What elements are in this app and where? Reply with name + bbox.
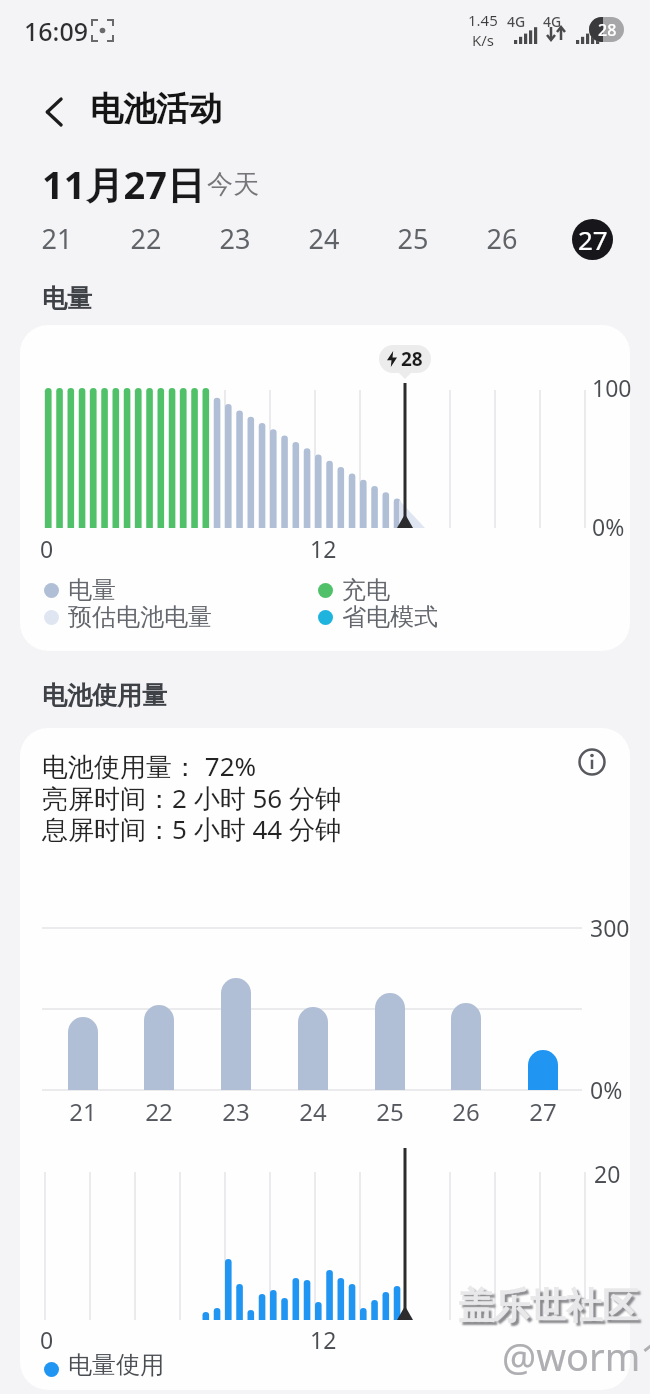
staticText: 20: [594, 1158, 621, 1189]
button[interactable]: [45, 98, 64, 126]
staticText: 16:09: [24, 14, 89, 48]
staticText: 省电模式: [342, 602, 438, 632]
button[interactable]: 23: [213, 220, 257, 257]
staticText: 22: [139, 1095, 179, 1128]
staticText: 盖乐世社区: [458, 1283, 638, 1328]
staticText: 4G: [507, 12, 526, 31]
staticText: 300: [590, 912, 630, 943]
staticText: 充电: [342, 575, 390, 605]
staticText: 26: [446, 1095, 486, 1128]
staticText: 28: [598, 19, 617, 41]
staticText: 11月27日: [42, 158, 205, 210]
staticText: 电量使用: [68, 1350, 164, 1380]
staticText: 21: [63, 1095, 103, 1128]
staticText: 电池活动: [90, 88, 222, 130]
staticText: 24: [293, 1095, 333, 1128]
staticText: 电池使用量: [42, 680, 167, 711]
button[interactable]: 27: [572, 219, 613, 260]
staticText: 4G: [543, 12, 562, 31]
staticText: 0%: [590, 1074, 623, 1105]
staticText: 27: [523, 1095, 563, 1128]
staticText: 预估电池电量: [68, 602, 212, 632]
staticText: 23: [216, 1095, 256, 1128]
button[interactable]: 21: [35, 220, 79, 257]
staticText: 电量: [68, 575, 116, 605]
staticText: 0: [40, 1324, 54, 1355]
staticText: 100: [592, 372, 632, 403]
staticText: 12: [310, 1324, 337, 1355]
button[interactable]: 22: [124, 220, 168, 257]
staticText: 电量: [42, 283, 92, 314]
staticText: 电池使用量： 72%: [42, 748, 257, 784]
staticText: 12: [310, 533, 337, 564]
staticText: 今天: [207, 168, 259, 201]
staticText: 27: [578, 222, 608, 257]
staticText: @worm1: [502, 1330, 650, 1382]
staticText: 1.45: [468, 10, 498, 30]
staticText: 息屏时间：5 小时 44 分钟: [42, 811, 341, 847]
staticText: 25: [370, 1095, 410, 1128]
staticText: 28: [401, 346, 423, 372]
staticText: 0: [40, 533, 54, 564]
button[interactable]: 24: [302, 220, 346, 257]
staticText: K/s: [472, 30, 495, 50]
staticText: 亮屏时间：2 小时 56 分钟: [42, 780, 341, 816]
button[interactable]: 26: [480, 220, 524, 257]
staticText: 0%: [592, 511, 625, 542]
button[interactable]: 25: [391, 220, 435, 257]
button[interactable]: [578, 748, 606, 776]
